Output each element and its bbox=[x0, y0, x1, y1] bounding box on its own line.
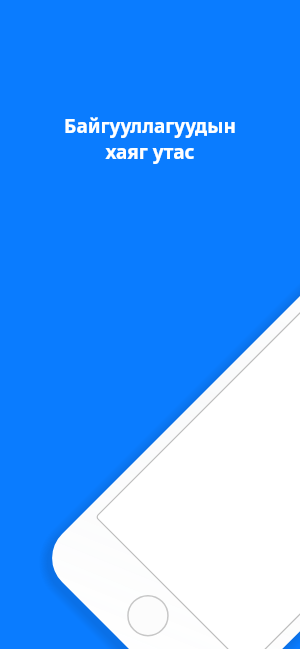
other: Phone illustration bbox=[0, 0, 300, 649]
staticText: хаяг утас bbox=[105, 139, 195, 165]
staticText: Байгууллагуудын bbox=[64, 113, 236, 139]
button[interactable]: Байгууллагуудын bbox=[20, 113, 280, 165]
